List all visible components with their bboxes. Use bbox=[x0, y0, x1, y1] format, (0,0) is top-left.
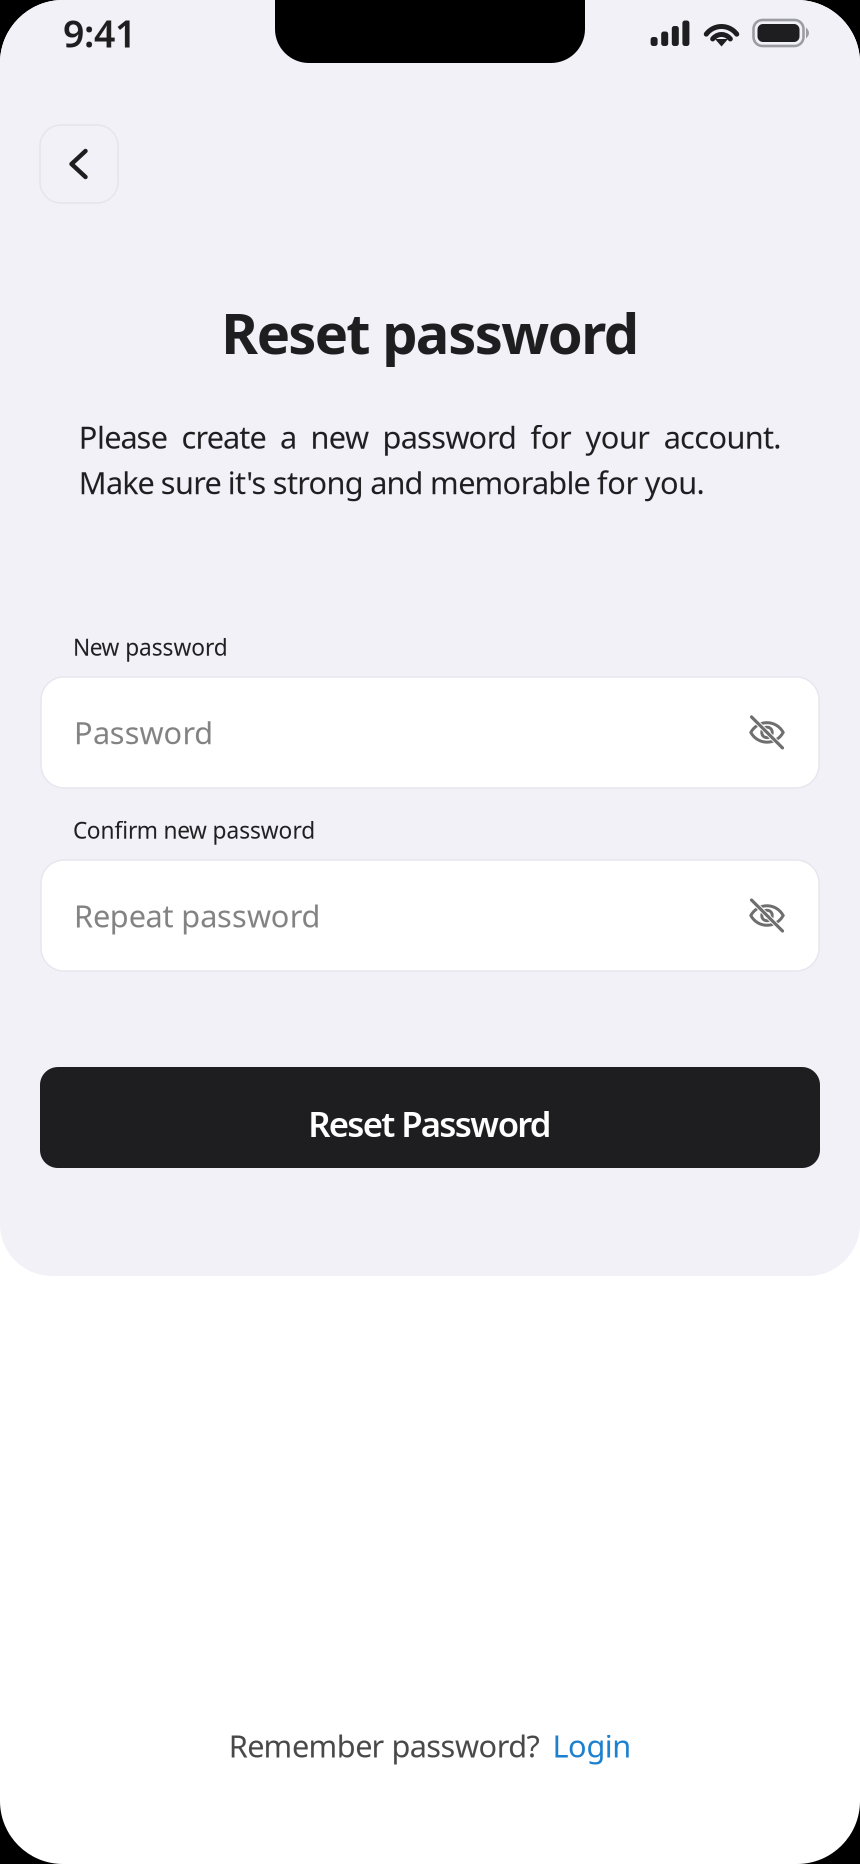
button[interactable]: Login bbox=[553, 1725, 631, 1766]
staticText: Confirm new password bbox=[73, 815, 315, 845]
button[interactable]: Show new password bbox=[731, 696, 803, 768]
staticText: Password bbox=[74, 712, 213, 753]
staticText: Repeat password bbox=[74, 895, 321, 936]
staticText: New password bbox=[73, 632, 228, 662]
staticText: Remember password? bbox=[229, 1725, 540, 1766]
staticText: Reset Password bbox=[308, 1100, 552, 1146]
button[interactable]: Show confirm new password bbox=[731, 879, 803, 951]
staticText: Reset password bbox=[221, 295, 639, 369]
staticText: Login bbox=[553, 1725, 631, 1766]
staticText: Make sure it's strong and memorable for … bbox=[79, 462, 704, 503]
button[interactable]: Reset Password bbox=[40, 1067, 820, 1168]
staticText: 9:41 bbox=[63, 8, 136, 58]
button[interactable]: Back bbox=[40, 125, 118, 203]
staticText: Please create a new password for your ac… bbox=[79, 416, 781, 457]
